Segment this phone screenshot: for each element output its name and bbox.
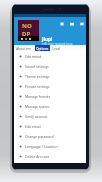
staticText: edit your account here	[42, 42, 73, 46]
button[interactable]: Edit email	[14, 121, 86, 131]
staticText: Sound settings	[25, 64, 49, 69]
staticText: Manage friends	[25, 94, 51, 99]
staticText: DP	[22, 30, 31, 38]
button[interactable]: Language / Location	[14, 141, 86, 151]
staticText: Private settings	[25, 84, 50, 89]
button[interactable]: Local	[51, 45, 62, 51]
staticText: Delete Account	[25, 154, 50, 159]
button[interactable]: Manage spaces	[14, 101, 86, 111]
button[interactable]: About me	[15, 45, 33, 51]
button[interactable]: Change password	[14, 131, 86, 141]
staticText: Edit mood	[25, 54, 42, 59]
button[interactable]: Manage friends	[14, 91, 86, 101]
staticText: Verify account	[25, 114, 48, 119]
staticText: Change password	[25, 134, 54, 139]
staticText: Edit email	[25, 124, 41, 129]
button[interactable]: Options	[35, 45, 50, 51]
button[interactable]: Search	[59, 21, 65, 27]
button[interactable]: Sound settings	[14, 61, 86, 71]
staticText: Manage spaces	[25, 104, 50, 109]
staticText: Language / Location	[25, 144, 58, 149]
button[interactable]: Edit mood	[14, 51, 86, 61]
button[interactable]: Theme settings	[14, 71, 86, 81]
staticText: About me	[16, 46, 32, 50]
staticText: Options	[36, 46, 49, 50]
button[interactable]: Private settings	[14, 81, 86, 91]
staticText: NO	[22, 22, 32, 30]
button[interactable]: Camera	[69, 21, 75, 27]
button[interactable]: Verify account	[14, 111, 86, 121]
button[interactable]: Delete Account	[14, 151, 86, 161]
staticText: Theme settings	[25, 74, 50, 79]
staticText: Local	[52, 46, 61, 50]
button[interactable]: More options	[79, 21, 85, 27]
staticText: Jiupi	[42, 36, 53, 42]
